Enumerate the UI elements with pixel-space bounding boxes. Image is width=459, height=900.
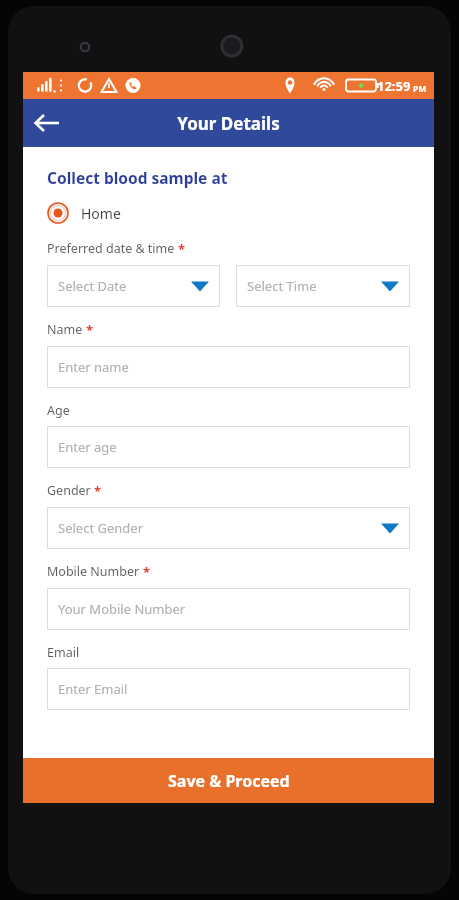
staticText: Select Date xyxy=(58,277,127,295)
staticText: * xyxy=(86,321,94,339)
button[interactable]: Back xyxy=(23,99,71,147)
button[interactable]: Select Gender xyxy=(47,507,410,549)
button[interactable]: Enter age xyxy=(47,426,410,468)
staticText: Save & Proceed xyxy=(168,770,290,792)
staticText: Mobile Number xyxy=(47,563,140,580)
staticText: Select Time xyxy=(247,277,317,295)
button[interactable]: Select Date xyxy=(47,265,220,307)
button[interactable]: Home xyxy=(47,202,121,224)
button[interactable]: Your Mobile Number xyxy=(47,588,410,630)
staticText: Your Details xyxy=(177,112,280,135)
staticText: Your Mobile Number xyxy=(58,600,186,618)
staticText: Age xyxy=(47,402,70,419)
staticText: Home xyxy=(81,204,121,223)
staticText: Preferred date & time xyxy=(47,240,175,257)
button[interactable]: Enter Email xyxy=(47,668,410,710)
staticText: Select Gender xyxy=(58,519,143,537)
staticText: Gender xyxy=(47,482,91,499)
button[interactable]: Enter name xyxy=(47,346,410,388)
staticText: Collect blood sample at xyxy=(47,167,228,188)
staticText: Enter age xyxy=(58,438,117,456)
button[interactable]: Select Time xyxy=(236,265,410,307)
staticText: Enter Email xyxy=(58,680,128,698)
button[interactable]: Save & Proceed xyxy=(23,758,434,803)
staticText: Email xyxy=(47,644,80,661)
staticText: 12:59 xyxy=(377,77,411,95)
staticText: * xyxy=(94,482,102,500)
staticText: Name xyxy=(47,321,83,338)
staticText: * xyxy=(143,563,151,581)
staticText: * xyxy=(178,240,186,258)
staticText: PM xyxy=(413,83,427,95)
staticText: Enter name xyxy=(58,358,129,376)
